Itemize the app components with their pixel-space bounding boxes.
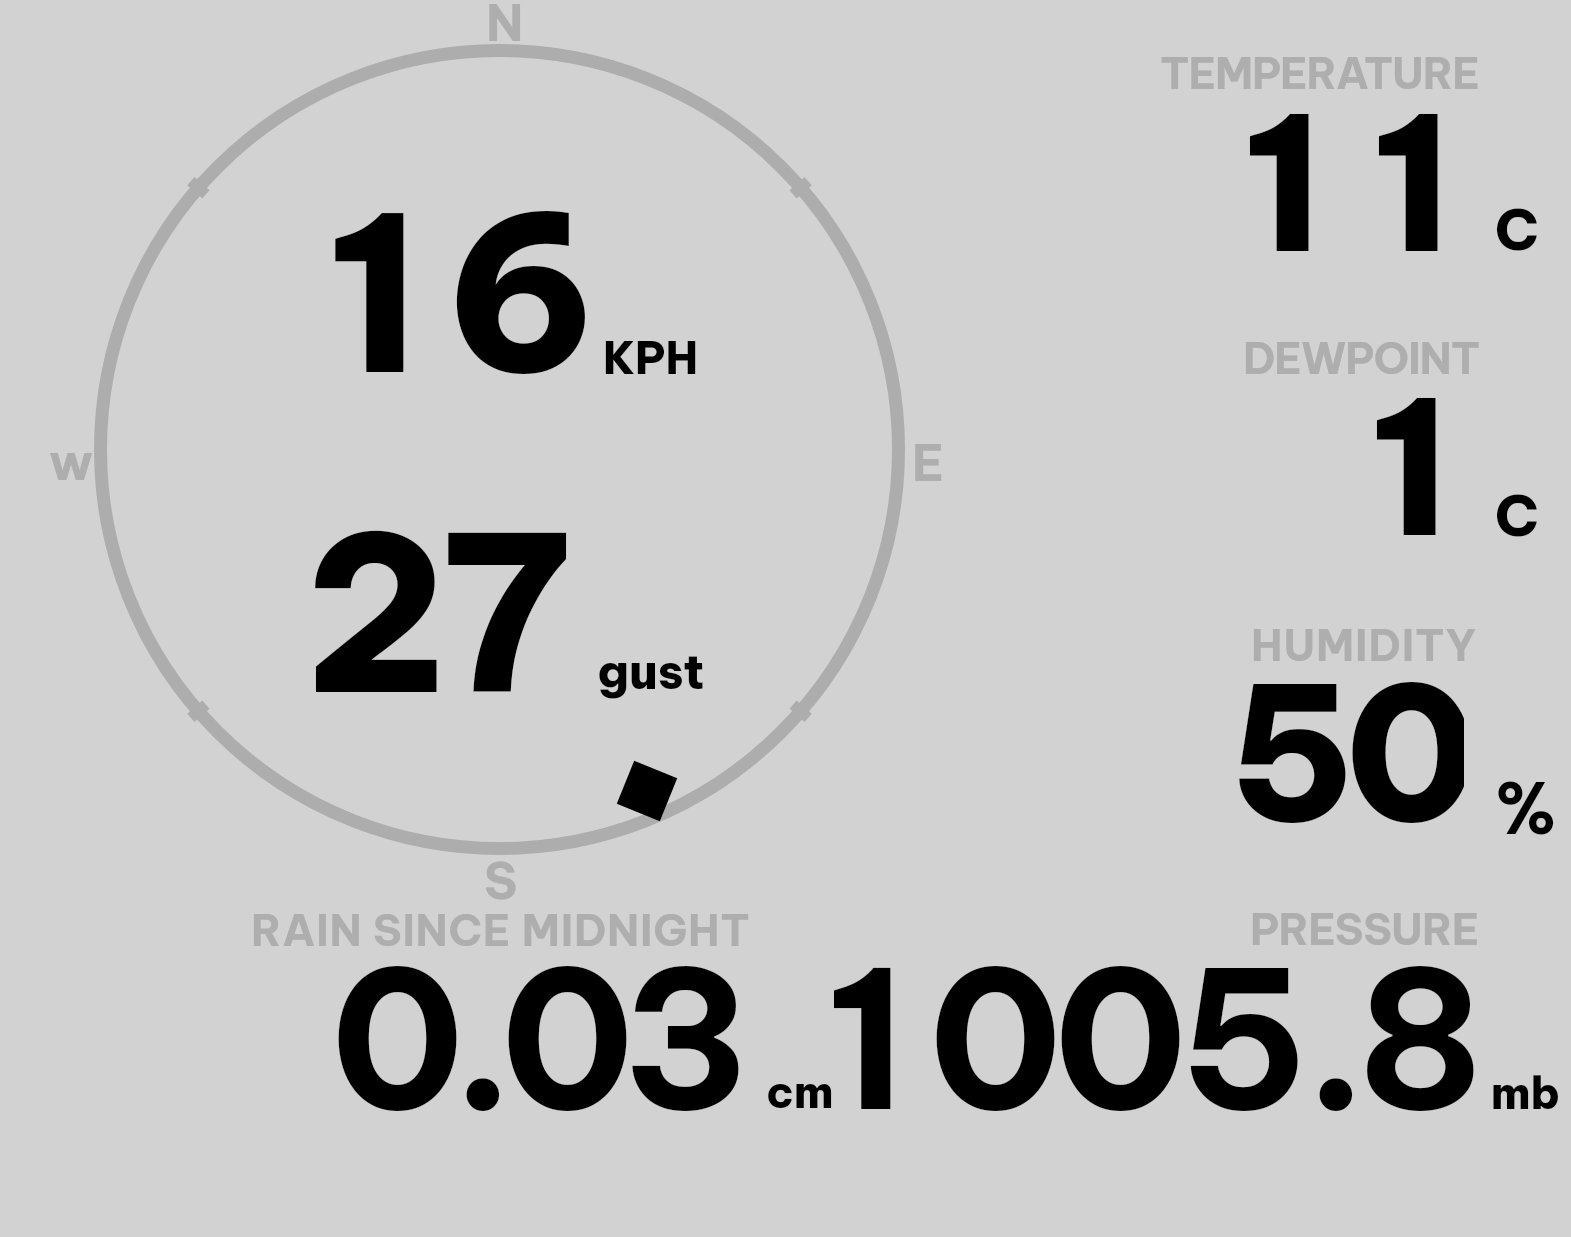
staticText: . [1304,919,1357,1159]
staticText: 0 [501,919,621,1159]
staticText: 1 [326,157,422,429]
staticText: 0 [929,919,1054,1159]
staticText: KPH [603,330,698,386]
staticText: C [1495,194,1539,265]
button[interactable]: TEMPERATURE [1100,40,1571,270]
staticText: . [451,919,501,1159]
staticText: 0 [1346,636,1464,866]
staticText: 1 [826,919,908,1159]
staticText: 1 [1242,66,1325,296]
staticText: mb [1491,1065,1561,1121]
button[interactable]: RAIN SINCE MIDNIGHT [200,895,840,1135]
staticText: 0 [331,919,451,1159]
staticText: 2 [305,477,439,749]
staticText: TEMPERATURE [1160,46,1479,100]
button[interactable]: HUMIDITY [1100,612,1571,842]
staticText: gust [597,641,705,702]
button[interactable]: PRESSURE [840,895,1571,1135]
staticText: 1 [1369,350,1452,580]
staticText: cm [766,1064,834,1120]
staticText: PRESSURE [1250,902,1479,956]
staticText: 5 [1228,636,1346,866]
staticText: 3 [621,919,741,1159]
staticText: w [49,430,94,493]
staticText: 1 [1371,66,1454,296]
staticText: % [1495,764,1557,853]
staticText: 8 [1357,919,1482,1159]
staticText: DEWPOINT [1243,331,1480,385]
staticText: S [484,849,518,912]
button[interactable]: Wind direction compass, 16 KPH gusting 2… [60,0,950,890]
staticText: C [1495,480,1539,551]
staticText: 5 [1179,919,1304,1159]
staticText: HUMIDITY [1251,618,1478,672]
staticText: 7 [442,477,571,749]
staticText: E [912,431,945,494]
staticText: 6 [445,157,587,429]
button[interactable]: DEWPOINT [1100,325,1571,555]
staticText: 0 [1054,919,1179,1159]
staticText: N [486,0,524,54]
staticText: RAIN SINCE MIDNIGHT [251,903,751,957]
